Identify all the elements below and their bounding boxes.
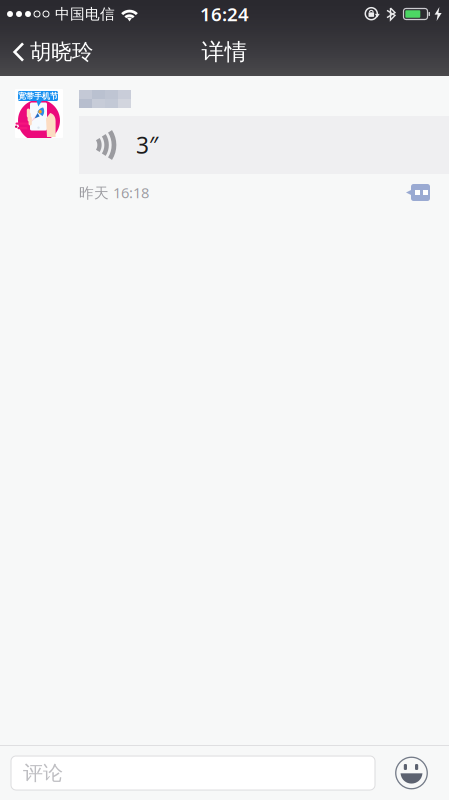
- staticText: 详情: [201, 38, 247, 66]
- button[interactable]: Emoji: [395, 756, 428, 789]
- staticText: 昨天 16:18: [79, 183, 149, 202]
- button[interactable]: 胡晓玲: [0, 29, 103, 75]
- staticText: 宽带手机节: [18, 91, 58, 101]
- button[interactable]: Comment: [400, 179, 436, 206]
- staticText: 中国电信: [55, 5, 115, 23]
- staticText: 评论: [23, 761, 63, 785]
- staticText: 胡晓玲: [30, 39, 93, 65]
- staticText: 16:24: [200, 2, 249, 26]
- staticText: 3″: [136, 130, 158, 160]
- button[interactable]: 评论: [11, 756, 375, 790]
